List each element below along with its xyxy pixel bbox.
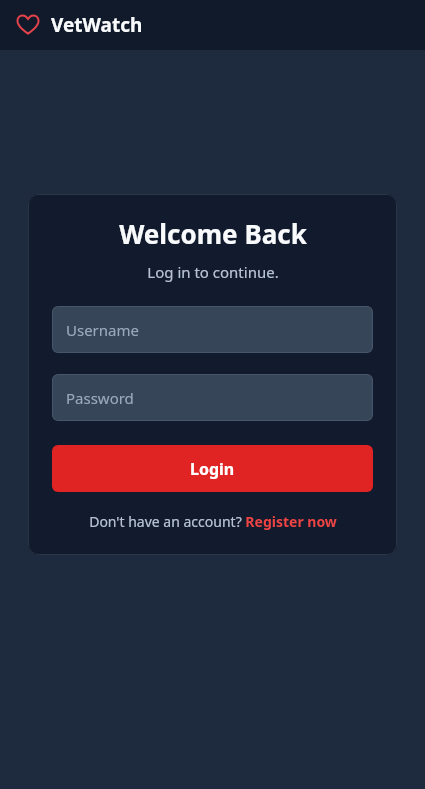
staticText: Login: [190, 458, 235, 480]
staticText: Password: [66, 388, 134, 408]
button[interactable]: Password: [52, 374, 373, 421]
button[interactable]: Don't have an account? Register now: [87, 510, 339, 533]
staticText: Welcome Back: [119, 216, 307, 251]
staticText: Don't have an account? Register now: [89, 512, 337, 531]
other: VetWatch logo: [16, 13, 40, 37]
button[interactable]: Login: [52, 445, 373, 492]
button[interactable]: Username: [52, 306, 373, 353]
staticText: Username: [66, 320, 139, 340]
staticText: VetWatch: [51, 12, 143, 38]
staticText: Log in to continue.: [147, 262, 279, 282]
